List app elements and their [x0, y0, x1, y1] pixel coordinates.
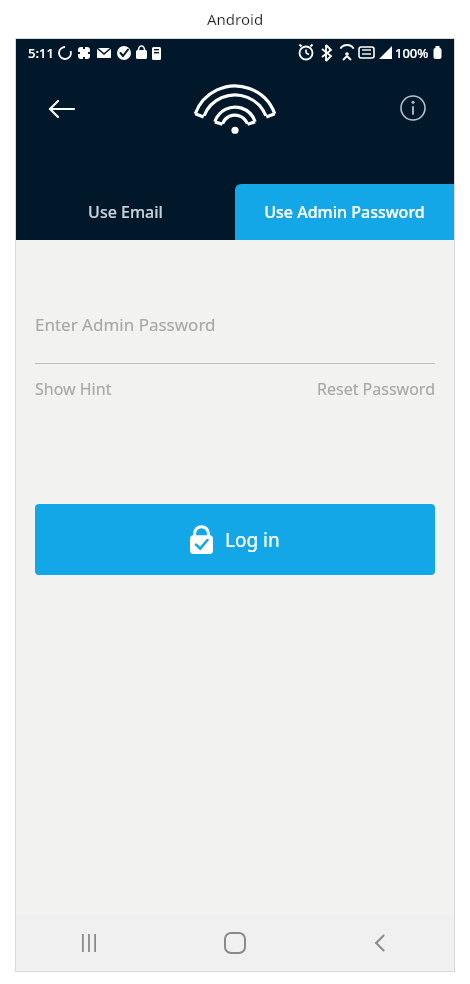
- button[interactable]: Recents: [16, 915, 162, 971]
- button[interactable]: Home: [162, 915, 308, 971]
- staticText: Reset Password: [317, 378, 435, 400]
- staticText: 5:11: [28, 44, 54, 62]
- button[interactable]: Log in: [35, 504, 435, 575]
- button[interactable]: Use Admin Password: [235, 184, 454, 240]
- staticText: 100%: [395, 44, 429, 62]
- staticText: Use Admin Password: [264, 201, 425, 223]
- button[interactable]: Enter Admin Password: [35, 304, 435, 344]
- staticText: Android: [207, 9, 264, 29]
- button[interactable]: Info: [390, 85, 436, 131]
- staticText: Log in: [225, 527, 280, 553]
- button[interactable]: Show Hint: [35, 378, 112, 400]
- button[interactable]: Back: [38, 85, 86, 133]
- staticText: Show Hint: [35, 378, 112, 400]
- button[interactable]: Use Email: [16, 184, 235, 240]
- button[interactable]: Reset Password: [317, 378, 435, 400]
- staticText: Use Email: [88, 201, 163, 223]
- staticText: Enter Admin Password: [35, 313, 216, 336]
- button[interactable]: Back: [308, 915, 454, 971]
